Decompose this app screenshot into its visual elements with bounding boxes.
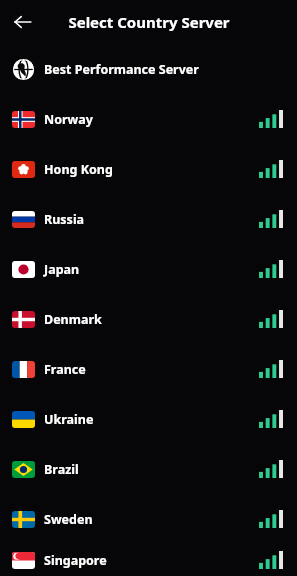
button[interactable]: Norway xyxy=(0,94,297,144)
staticText: Ukraine xyxy=(44,411,94,428)
staticText: Hong Kong xyxy=(44,161,113,178)
button[interactable]: Sweden xyxy=(0,494,297,544)
staticText: Japan xyxy=(44,261,80,278)
button[interactable]: Singapore xyxy=(0,544,297,576)
staticText: Sweden xyxy=(44,511,93,528)
staticText: Norway xyxy=(44,111,93,128)
staticText: Singapore xyxy=(44,552,107,569)
button[interactable]: France xyxy=(0,344,297,394)
staticText: Russia xyxy=(44,211,85,228)
button[interactable]: Best Performance Server xyxy=(0,44,297,94)
button[interactable]: Denmark xyxy=(0,294,297,344)
button[interactable]: Back xyxy=(7,6,39,38)
button[interactable]: Japan xyxy=(0,244,297,294)
staticText: Best Performance Server xyxy=(44,61,199,78)
staticText: Select Country Server xyxy=(68,12,230,32)
staticText: Brazil xyxy=(44,461,79,478)
staticText: France xyxy=(44,361,86,378)
staticText: Denmark xyxy=(44,311,102,328)
button[interactable]: Brazil xyxy=(0,444,297,494)
button[interactable]: Ukraine xyxy=(0,394,297,444)
button[interactable]: Hong Kong xyxy=(0,144,297,194)
button[interactable]: Russia xyxy=(0,194,297,244)
